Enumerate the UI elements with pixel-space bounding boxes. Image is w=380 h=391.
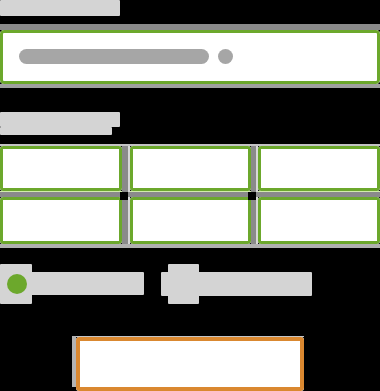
- button[interactable]: Tile 2: [130, 146, 251, 191]
- button[interactable]: Tile 5: [130, 197, 251, 244]
- button[interactable]: Tile 6: [258, 197, 380, 244]
- button[interactable]: Item 1, selected: [0, 264, 144, 304]
- button[interactable]: Search: [0, 30, 380, 84]
- button[interactable]: Tile 4: [0, 197, 122, 244]
- button[interactable]: Item 2: [161, 264, 312, 304]
- button[interactable]: Tile 1: [0, 146, 122, 191]
- button[interactable]: Tile 3: [258, 146, 380, 191]
- button[interactable]: Continue: [76, 337, 304, 391]
